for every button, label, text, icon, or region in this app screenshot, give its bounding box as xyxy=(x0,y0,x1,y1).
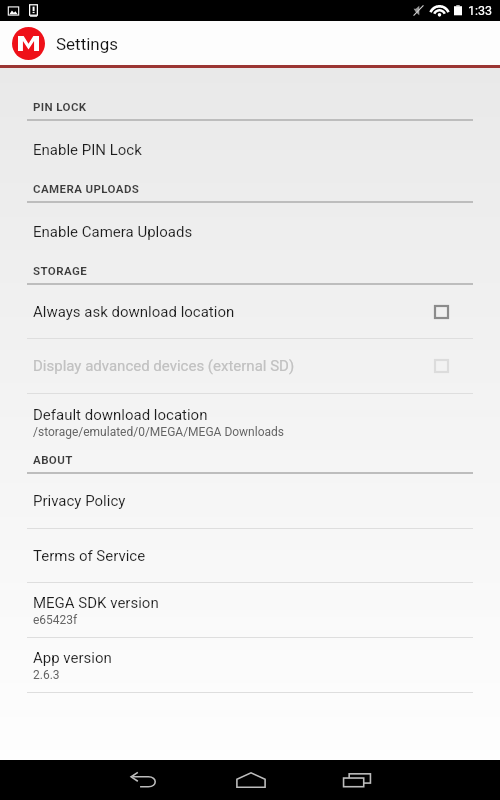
button[interactable]: Display advanced devices (external SD) xyxy=(0,339,500,393)
staticText: MEGA SDK version xyxy=(33,594,159,612)
staticText: Privacy Policy xyxy=(33,492,126,510)
button[interactable]: Enable Camera Uploads xyxy=(0,203,500,260)
button[interactable]: Default download location xyxy=(0,394,500,450)
button[interactable]: MEGA home xyxy=(12,27,45,60)
button[interactable]: Home xyxy=(216,760,286,800)
button[interactable]: Enable PIN Lock xyxy=(0,121,500,179)
staticText: App version xyxy=(33,649,112,667)
button[interactable]: App version xyxy=(0,638,500,692)
staticText: CAMERA UPLOADS xyxy=(33,182,140,195)
staticText: e65423f xyxy=(33,613,78,627)
staticText: PIN LOCK xyxy=(33,100,87,113)
staticText: Always ask download location xyxy=(33,303,235,321)
staticText: Terms of Service xyxy=(33,547,146,565)
staticText: 2.6.3 xyxy=(33,668,60,682)
button[interactable]: Recent apps xyxy=(322,760,392,800)
staticText: Settings xyxy=(56,34,119,54)
staticText: ABOUT xyxy=(33,453,73,466)
staticText: Display advanced devices (external SD) xyxy=(33,357,295,375)
button[interactable]: Back xyxy=(109,760,179,800)
staticText: /storage/emulated/0/MEGA/MEGA Downloads xyxy=(33,425,284,439)
staticText: Enable PIN Lock xyxy=(33,141,142,159)
button[interactable]: MEGA SDK version xyxy=(0,583,500,637)
staticText: Default download location xyxy=(33,406,208,424)
button[interactable]: Privacy Policy xyxy=(0,474,500,528)
staticText: Enable Camera Uploads xyxy=(33,223,193,241)
button[interactable]: Terms of Service xyxy=(0,529,500,582)
staticText: STORAGE xyxy=(33,264,88,277)
staticText: 1:33 xyxy=(468,3,493,18)
button[interactable]: Always ask download location xyxy=(0,285,500,338)
